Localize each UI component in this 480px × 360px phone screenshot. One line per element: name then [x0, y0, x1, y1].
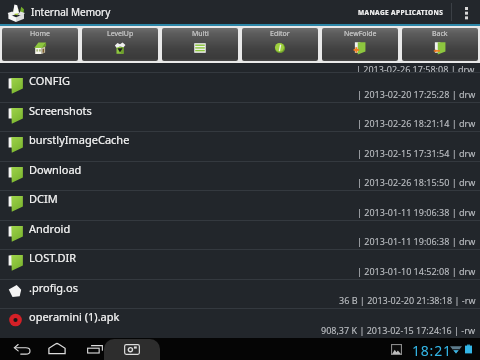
button[interactable]: Back — [7, 338, 37, 360]
staticText: Internal Memory — [31, 5, 111, 19]
staticText: NewFolde — [344, 29, 377, 39]
button[interactable]: Editor — [242, 28, 318, 61]
staticText: | 2013-01-11 19:06:38 | drw — [357, 206, 476, 218]
staticText: | 2013-01-10 14:52:08 | drw — [357, 265, 476, 277]
staticText: DCIM — [29, 191, 58, 206]
button[interactable]: Android — [0, 221, 480, 249]
staticText: MANAGE APPLICATIONS — [358, 8, 444, 17]
staticText: operamini (1).apk — [29, 309, 120, 324]
button[interactable]: Home — [42, 338, 72, 360]
staticText: Back — [432, 29, 448, 39]
staticText: LevelUp — [107, 29, 134, 39]
staticText: | 2013-01-11 19:06:38 | drw — [357, 235, 476, 247]
staticText: | 2013-02-26 18:15:50 | drw — [357, 176, 476, 188]
button[interactable]: operamini (1).apk — [0, 309, 480, 338]
staticText: Editor — [270, 29, 290, 39]
staticText: .profig.os — [29, 280, 78, 295]
button[interactable]: MANAGE APPLICATIONS — [351, 0, 451, 24]
staticText: Multi — [192, 29, 209, 39]
button[interactable]: .profig.os — [0, 280, 480, 308]
button[interactable]: burstlyImageCache — [0, 132, 480, 161]
staticText: Screenshots — [29, 103, 92, 118]
staticText: 36 B | 2013-02-20 21:38:18 | -rw — [339, 294, 476, 306]
button[interactable]: Multi — [162, 28, 238, 61]
button[interactable]: DCIM — [0, 191, 480, 220]
staticText: Download — [29, 162, 82, 177]
button[interactable]: | 2013-02-26 17:58:08 | drw — [0, 63, 480, 72]
staticText: | 2013-02-26 18:21:14 | drw — [357, 117, 476, 129]
button[interactable]: Download — [0, 162, 480, 190]
staticText: Home — [30, 29, 50, 39]
staticText: LOST.DIR — [29, 250, 77, 265]
button[interactable]: CONFIG — [0, 73, 480, 102]
button[interactable]: More options — [452, 0, 480, 24]
button[interactable]: Home — [2, 28, 78, 61]
staticText: 18:21 — [412, 341, 452, 360]
staticText: | 2013-02-15 17:31:54 | drw — [357, 147, 476, 159]
button[interactable]: NewFolde — [322, 28, 398, 61]
button[interactable]: Recent apps — [80, 338, 110, 360]
button[interactable]: Screenshot — [104, 339, 160, 360]
button[interactable]: LOST.DIR — [0, 250, 480, 279]
button[interactable]: Back — [402, 28, 478, 61]
button[interactable]: Screenshots — [0, 103, 480, 131]
staticText: | 2013-02-26 17:58:08 | drw — [356, 63, 475, 72]
staticText: 908,37 K | 2013-02-15 17:24:16 | -rw — [321, 324, 476, 336]
staticText: burstlyImageCache — [29, 132, 130, 147]
button[interactable]: LevelUp — [82, 28, 158, 61]
staticText: Android — [29, 221, 71, 236]
staticText: CONFIG — [29, 73, 71, 88]
staticText: | 2013-02-20 17:25:28 | drw — [357, 88, 476, 100]
